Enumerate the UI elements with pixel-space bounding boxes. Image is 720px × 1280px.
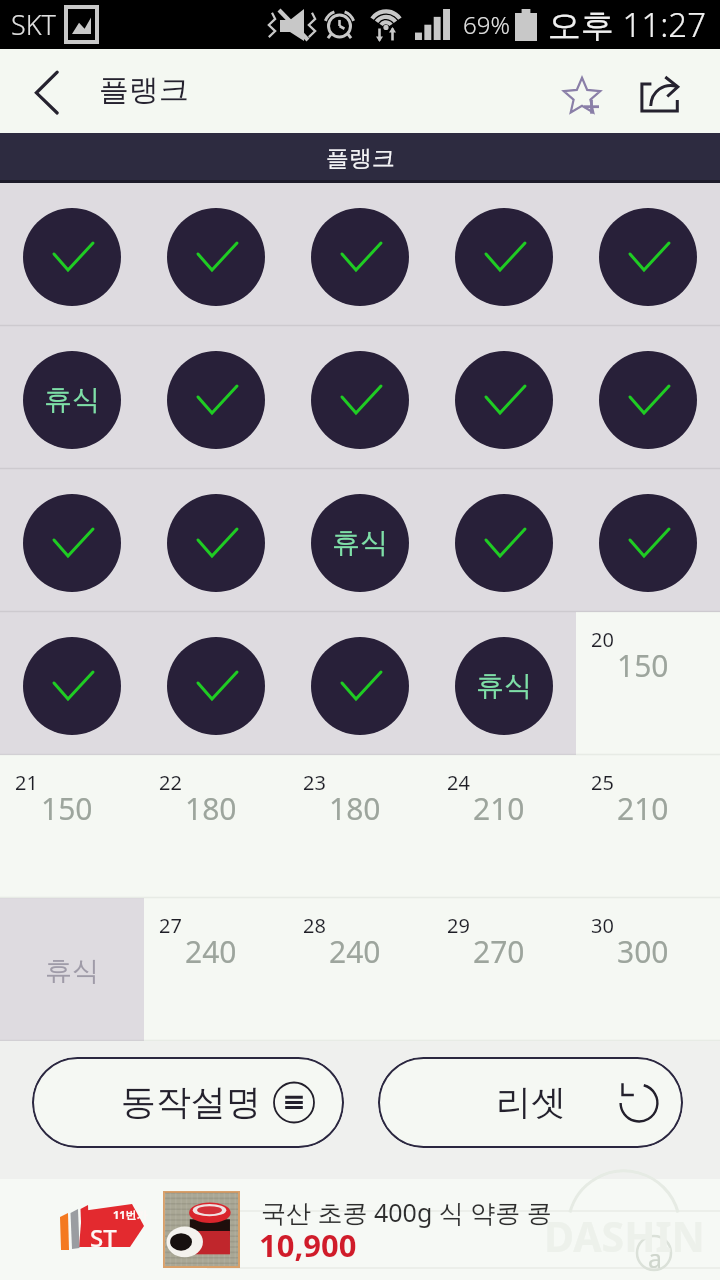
staticText: 240	[185, 931, 237, 972]
button[interactable]: Back	[0, 49, 84, 133]
button[interactable]	[0, 612, 144, 755]
staticText: 210	[473, 788, 525, 829]
button[interactable]: 리셋	[378, 1057, 683, 1148]
button[interactable]: 29	[432, 898, 576, 1041]
staticText: 휴식	[45, 954, 99, 988]
staticText: 10,900	[259, 1224, 357, 1266]
staticText: 150	[41, 788, 93, 829]
button[interactable]: 동작설명	[32, 1057, 344, 1148]
button[interactable]: 22	[144, 755, 288, 898]
button[interactable]	[144, 326, 288, 469]
button[interactable]: Favorite	[544, 51, 624, 131]
staticText: 210	[617, 788, 669, 829]
button[interactable]	[576, 183, 720, 326]
button[interactable]	[432, 326, 576, 469]
staticText: 69%	[463, 8, 510, 41]
staticText: 30	[591, 912, 614, 939]
staticText: 24	[447, 769, 470, 796]
staticText: 휴식	[476, 668, 532, 703]
button[interactable]: 28	[288, 898, 432, 1041]
button[interactable]	[576, 326, 720, 469]
button[interactable]	[144, 612, 288, 755]
button[interactable]: 25	[576, 755, 720, 898]
staticText: 플랭크	[99, 71, 189, 109]
button[interactable]: Share	[624, 51, 702, 129]
staticText: 23	[303, 769, 326, 796]
staticText: 휴식	[332, 525, 388, 560]
button[interactable]	[432, 469, 576, 612]
staticText: 240	[329, 931, 381, 972]
button[interactable]: 23	[288, 755, 432, 898]
button[interactable]: 21	[0, 755, 144, 898]
staticText: 28	[303, 912, 326, 939]
staticText: 29	[447, 912, 470, 939]
staticText: 21	[15, 769, 38, 796]
button[interactable]	[288, 612, 432, 755]
button[interactable]: 휴식	[0, 898, 144, 1041]
button[interactable]: 30	[576, 898, 720, 1041]
staticText: 27	[159, 912, 182, 939]
button[interactable]: 24	[432, 755, 576, 898]
button[interactable]: 휴식	[0, 326, 144, 469]
staticText: 11번가	[113, 1207, 148, 1222]
staticText: 180	[185, 788, 237, 829]
button[interactable]: DASHIN	[0, 1179, 720, 1280]
staticText: a	[648, 1241, 663, 1275]
staticText: 20	[591, 626, 614, 653]
button[interactable]	[0, 183, 144, 326]
staticText: 리셋	[496, 1080, 566, 1124]
staticText: 동작설명	[121, 1080, 261, 1124]
button[interactable]	[144, 469, 288, 612]
staticText: 25	[591, 769, 614, 796]
staticText: 휴식	[44, 382, 100, 417]
staticText: 270	[473, 931, 525, 972]
button[interactable]	[576, 469, 720, 612]
button[interactable]	[144, 183, 288, 326]
button[interactable]: 휴식	[432, 612, 576, 755]
button[interactable]	[288, 326, 432, 469]
button[interactable]: 27	[144, 898, 288, 1041]
button[interactable]	[432, 183, 576, 326]
staticText: DASHIN	[544, 1208, 705, 1264]
staticText: 오후 11:27	[548, 2, 707, 47]
staticText: ST	[90, 1221, 117, 1254]
staticText: 180	[329, 788, 381, 829]
staticText: SKT	[11, 6, 56, 43]
button[interactable]	[288, 183, 432, 326]
staticText: 플랭크	[326, 144, 395, 173]
button[interactable]	[0, 469, 144, 612]
staticText: 22	[159, 769, 182, 796]
staticText: 150	[617, 645, 669, 686]
button[interactable]: 20	[576, 612, 720, 755]
staticText: 국산 초콩 400g 식 약콩 콩	[261, 1195, 552, 1229]
button[interactable]: 휴식	[288, 469, 432, 612]
staticText: 300	[617, 931, 669, 972]
